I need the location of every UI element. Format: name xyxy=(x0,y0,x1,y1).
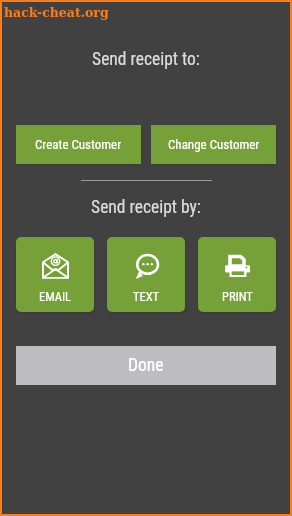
staticText: Done xyxy=(128,355,164,376)
staticText: Change Customer xyxy=(168,137,260,152)
staticText: EMAIL xyxy=(39,289,72,304)
other: Print receipt xyxy=(225,255,250,277)
button[interactable]: Print receipt xyxy=(198,237,276,312)
staticText: Create Customer xyxy=(35,137,122,152)
staticText: Send receipt to: xyxy=(2,49,290,70)
button[interactable]: Send receipt by text message xyxy=(107,237,185,312)
other: Send receipt by text message xyxy=(134,254,159,279)
staticText: PRINT xyxy=(222,289,253,304)
button[interactable]: Send receipt by email xyxy=(16,237,94,312)
button[interactable]: Create Customer xyxy=(16,125,141,164)
button[interactable]: Change Customer xyxy=(151,125,276,164)
staticText: TEXT xyxy=(133,289,160,304)
other: Send receipt by email xyxy=(42,253,69,279)
button[interactable]: Done xyxy=(16,346,276,385)
staticText: hack-cheat.org xyxy=(4,5,109,20)
staticText: Send receipt by: xyxy=(2,197,290,218)
